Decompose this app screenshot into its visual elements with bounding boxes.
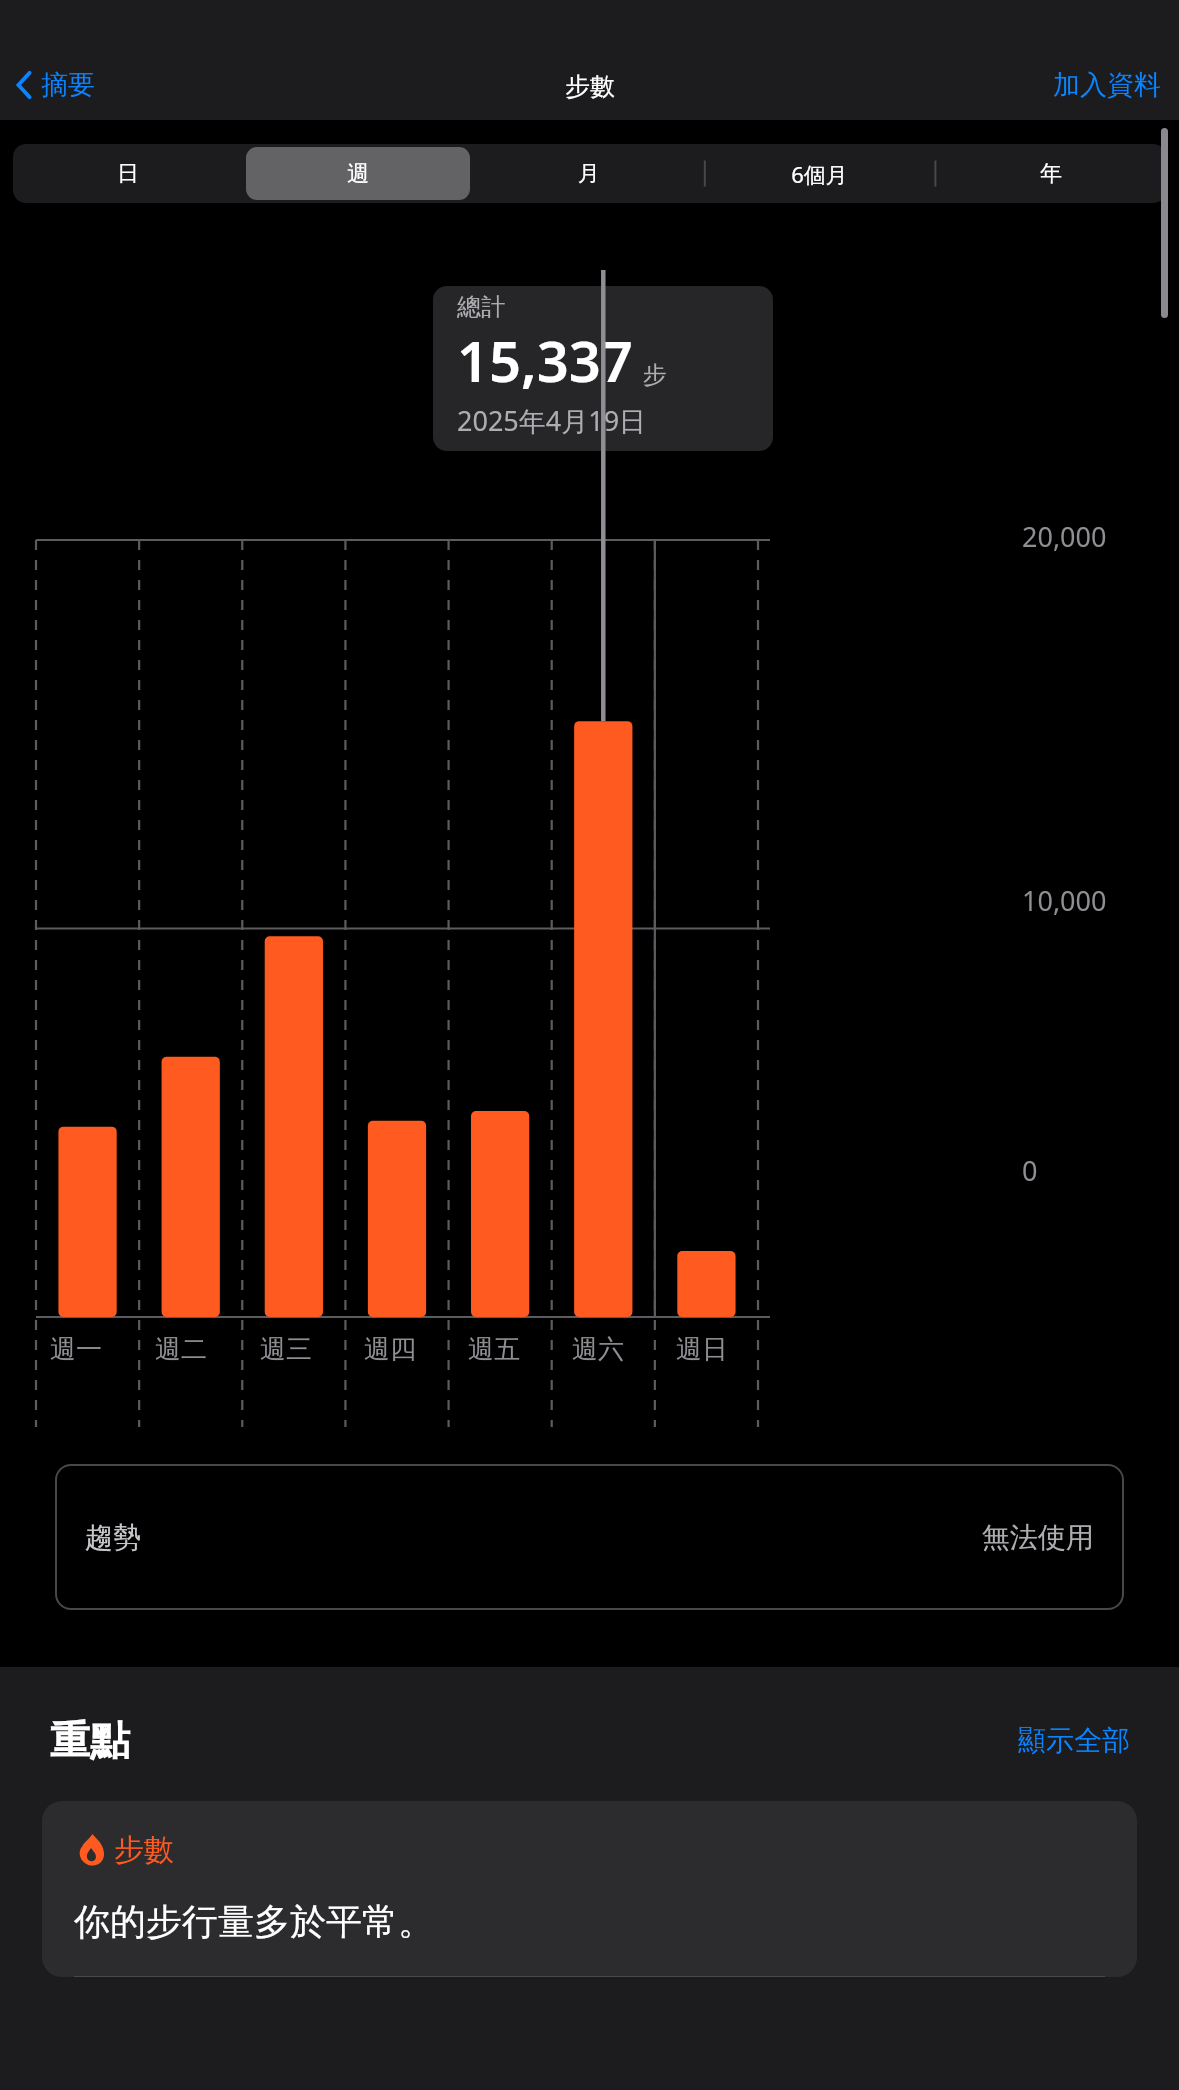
staticText: 週四 — [364, 1333, 416, 1366]
button[interactable]: 顯示全部 — [1014, 1719, 1134, 1762]
button[interactable]: 週 — [246, 147, 470, 200]
staticText: 日 — [117, 160, 139, 188]
staticText: 週一 — [50, 1333, 102, 1366]
staticText: 趨勢 — [85, 1520, 141, 1555]
staticText: 0 — [1022, 1152, 1038, 1189]
button[interactable]: 年 — [938, 147, 1163, 200]
staticText: 週三 — [260, 1333, 312, 1366]
staticText: 2025年4月19日 — [457, 402, 647, 439]
staticText: 週五 — [468, 1333, 520, 1366]
staticText: 20,000 — [1022, 518, 1107, 555]
staticText: 15,337 — [457, 322, 633, 398]
button[interactable]: 摘要 — [8, 60, 101, 110]
button[interactable]: 步數重點 — [42, 1801, 1137, 1977]
staticText: 週二 — [155, 1333, 207, 1366]
button[interactable]: 趨勢 — [55, 1464, 1124, 1610]
staticText: 年 — [1040, 160, 1062, 188]
staticText: 無法使用 — [982, 1520, 1094, 1555]
staticText: 你的步行量多於平常。 — [74, 1899, 434, 1944]
staticText: 摘要 — [41, 68, 95, 102]
other: 步數重點 — [74, 1833, 108, 1867]
staticText: 步數 — [114, 1831, 174, 1869]
staticText: 步數 — [565, 71, 615, 102]
staticText: 步 — [643, 360, 667, 390]
button[interactable]: 6個月 — [707, 147, 932, 200]
button[interactable]: 日 — [16, 147, 240, 200]
staticText: 月 — [578, 160, 600, 188]
staticText: 10,000 — [1022, 882, 1107, 919]
staticText: 顯示全部 — [1018, 1723, 1130, 1758]
staticText: 週六 — [572, 1333, 624, 1366]
button[interactable]: 月 — [476, 147, 701, 200]
staticText: 總計 — [457, 292, 505, 322]
staticText: 加入資料 — [1053, 68, 1161, 102]
staticText: 週 — [347, 160, 369, 188]
staticText: 重點 — [50, 1715, 130, 1765]
staticText: 6個月 — [791, 159, 848, 189]
staticText: 週日 — [676, 1333, 728, 1366]
button[interactable]: 加入資料 — [1047, 60, 1167, 110]
